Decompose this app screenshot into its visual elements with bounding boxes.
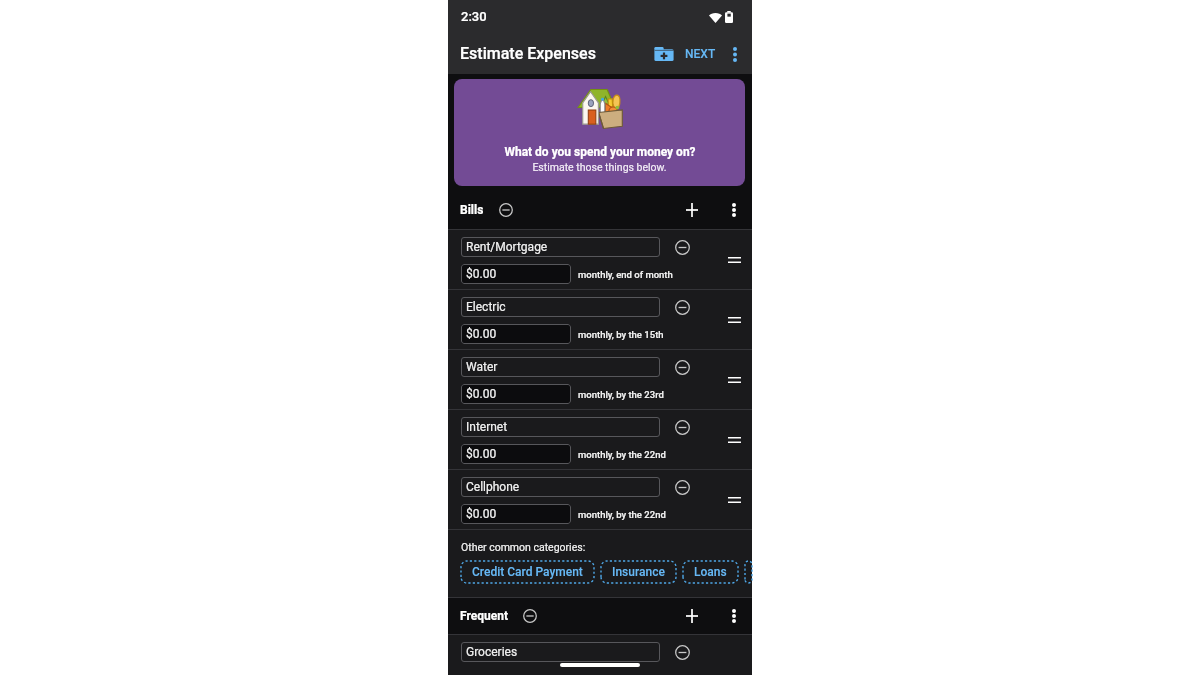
staticText: $0.00 <box>466 387 497 401</box>
staticText: Groceries <box>466 645 518 659</box>
button[interactable]: Collapse Bills <box>493 197 519 223</box>
staticText: monthly, by the 22nd <box>578 449 666 460</box>
button[interactable]: Reorder Cellphone <box>716 470 752 529</box>
button[interactable]: Electric <box>448 290 752 349</box>
button[interactable]: Subscriptions <box>745 561 752 583</box>
staticText: Estimate Expenses <box>460 44 596 63</box>
button[interactable]: Loans <box>683 561 738 583</box>
button[interactable]: Remove Cellphone <box>670 475 694 499</box>
button[interactable]: Insurance <box>601 561 676 583</box>
button[interactable]: Rent/Mortgage <box>448 230 752 289</box>
button[interactable]: Add item to Frequent <box>677 601 707 631</box>
staticText: $0.00 <box>466 267 497 281</box>
button[interactable]: Remove Water <box>670 355 694 379</box>
button[interactable]: Bills options <box>721 197 747 223</box>
staticText: Bills <box>460 203 484 217</box>
staticText: $0.00 <box>466 447 497 461</box>
button[interactable]: Water <box>448 350 752 409</box>
button[interactable]: What do you spend your money on? <box>454 79 745 186</box>
button[interactable]: Reorder Electric <box>716 290 752 349</box>
staticText: Internet <box>466 420 508 434</box>
staticText: Insurance <box>612 565 665 579</box>
staticText: $0.00 <box>466 327 497 341</box>
button[interactable]: Remove Electric <box>670 295 694 319</box>
staticText: Water <box>466 360 498 374</box>
staticText: monthly, by the 15th <box>578 329 664 340</box>
button[interactable]: Cellphone <box>448 470 752 529</box>
button[interactable]: Remove Rent/Mortgage <box>670 235 694 259</box>
staticText: monthly, by the 23rd <box>578 389 664 400</box>
staticText: Loans <box>694 565 727 579</box>
staticText: Electric <box>466 300 506 314</box>
staticText: NEXT <box>685 47 716 61</box>
staticText: What do you spend your money on? <box>504 145 696 159</box>
staticText: Frequent <box>460 609 508 623</box>
button[interactable]: Credit Card Payment <box>461 561 594 583</box>
staticText: $0.00 <box>466 507 497 521</box>
button[interactable]: Reorder Water <box>716 350 752 409</box>
button[interactable]: Remove Groceries <box>670 640 694 664</box>
button[interactable]: Reorder Internet <box>716 410 752 469</box>
staticText: 2:30 <box>461 9 487 24</box>
staticText: Credit Card Payment <box>472 565 583 579</box>
staticText: Other common categories: <box>461 541 586 553</box>
button[interactable]: More options <box>722 37 748 71</box>
staticText: monthly, by the 22nd <box>578 509 666 520</box>
button[interactable]: New folder <box>649 37 679 71</box>
button[interactable]: Internet <box>448 410 752 469</box>
staticText: Estimate those things below. <box>532 161 667 173</box>
staticText: Cellphone <box>466 480 520 494</box>
staticText: Rent/Mortgage <box>466 240 548 254</box>
button[interactable]: Add item to Bills <box>677 195 707 225</box>
button[interactable]: NEXT <box>679 37 722 71</box>
staticText: monthly, end of month <box>578 269 673 280</box>
button[interactable]: Groceries <box>448 635 752 675</box>
button[interactable]: Collapse Frequent <box>517 603 543 629</box>
button[interactable]: Remove Internet <box>670 415 694 439</box>
button[interactable]: Reorder Rent/Mortgage <box>716 230 752 289</box>
button[interactable]: Frequent options <box>721 603 747 629</box>
